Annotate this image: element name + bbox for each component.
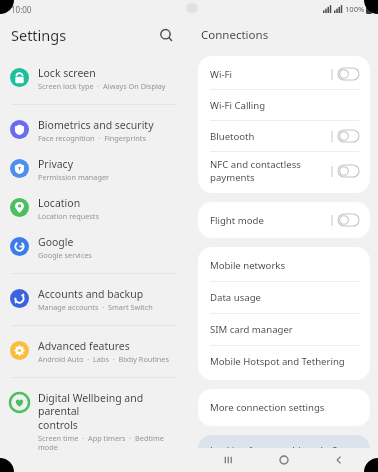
staticText: Settings [11, 25, 156, 45]
button[interactable]: Mobile networks [198, 250, 370, 281]
staticText: Android Auto · Labs · Bixby Routines [38, 354, 169, 364]
button[interactable]: Flight mode [198, 205, 370, 235]
staticText: Looking for something else? [210, 444, 338, 457]
staticText: Flight mode [210, 214, 264, 227]
button[interactable]: Back [323, 448, 355, 472]
button[interactable]: More connection settings [198, 392, 370, 423]
button[interactable]: NFC and contactless [198, 152, 370, 190]
button[interactable]: Biometrics and security [0, 111, 190, 150]
button[interactable]: Looking for something else? [198, 435, 370, 472]
button[interactable]: Digital Wellbeing and parental [0, 384, 190, 459]
button[interactable]: Wi-Fi [198, 59, 370, 89]
staticText: 10:00 [11, 4, 32, 15]
button[interactable]: SIM card manager [198, 314, 370, 345]
staticText: Location requests [38, 211, 99, 221]
staticText: SIM card manager [210, 323, 293, 336]
staticText: Bluetooth [210, 130, 255, 143]
staticText: Permission manager [38, 172, 110, 182]
staticText: Google services [38, 250, 92, 260]
button[interactable]: Mobile Hotspot and Tethering [198, 346, 370, 377]
staticText: Manage accounts · Smart Switch [38, 302, 153, 312]
button[interactable]: Accounts and backup [0, 280, 190, 319]
button[interactable]: Lock screen [0, 59, 190, 98]
button[interactable]: Data usage [198, 282, 370, 313]
staticText: 100% [345, 4, 365, 14]
staticText: Accounts and backup [38, 287, 144, 301]
staticText: Digital Wellbeing and parental [38, 391, 178, 418]
staticText: NFC and contactless [210, 158, 301, 171]
button[interactable]: Search [156, 25, 176, 45]
staticText: Connections [201, 27, 269, 43]
button[interactable]: Privacy [0, 150, 190, 189]
staticText: Biometrics and security [38, 118, 154, 132]
staticText: Screen lock type · Always On Display [38, 81, 166, 91]
staticText: Mobile Hotspot and Tethering [210, 355, 345, 368]
staticText: Data usage [210, 291, 261, 304]
staticText: Privacy [38, 157, 74, 171]
staticText: Google [38, 235, 74, 249]
staticText: Lock screen [38, 66, 96, 80]
button[interactable]: Wi-Fi Calling [198, 90, 370, 120]
staticText: controls [38, 418, 78, 432]
staticText: Mobile networks [210, 259, 286, 272]
staticText: More connection settings [210, 401, 325, 414]
button[interactable]: Home [268, 448, 300, 472]
staticText: Wi-Fi Calling [210, 99, 266, 112]
staticText: Advanced features [38, 339, 130, 353]
staticText: Screen time · App timers · Bedtime mode [38, 433, 178, 452]
staticText: Wi-Fi [210, 68, 232, 81]
button[interactable]: Recent apps [213, 448, 245, 472]
button[interactable]: Location [0, 189, 190, 228]
button[interactable]: Bluetooth [198, 121, 370, 151]
staticText: payments [210, 171, 255, 184]
staticText: Location [38, 196, 81, 210]
button[interactable]: Advanced features [0, 332, 190, 371]
button[interactable]: Google [0, 228, 190, 267]
staticText: Face recognition · Fingerprints [38, 133, 146, 143]
